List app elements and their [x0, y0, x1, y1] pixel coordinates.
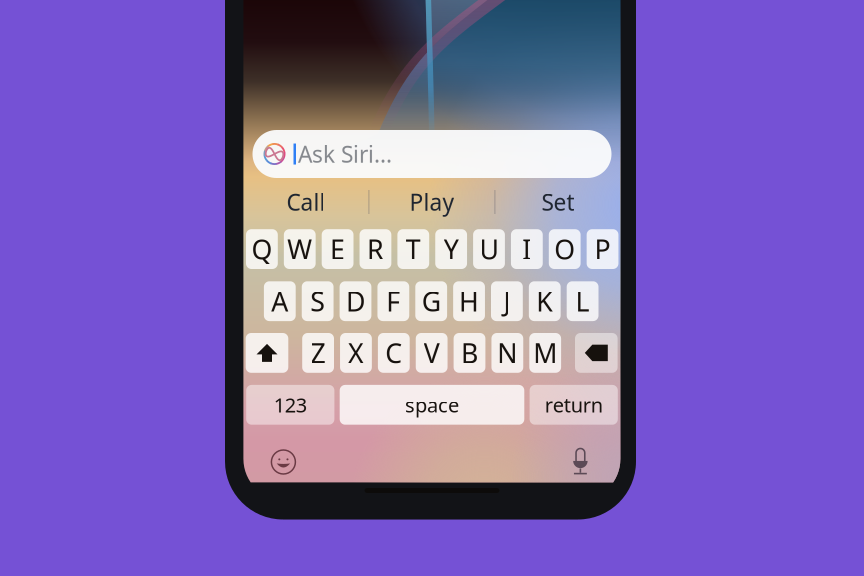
staticText: K: [536, 283, 553, 319]
button[interactable]: Shift: [246, 333, 288, 373]
button[interactable]: H: [453, 281, 485, 321]
staticText: G: [422, 283, 441, 319]
button[interactable]: U: [473, 229, 505, 269]
staticText: Play: [409, 187, 454, 217]
button[interactable]: N: [491, 333, 523, 373]
staticText: Ask Siri...: [298, 139, 392, 169]
staticText: H: [459, 283, 479, 319]
button[interactable]: W: [284, 229, 316, 269]
staticText: M: [533, 335, 557, 371]
button[interactable]: T: [397, 229, 429, 269]
button[interactable]: B: [454, 333, 485, 373]
button[interactable]: Set: [495, 188, 620, 216]
staticText: B: [461, 335, 478, 371]
button[interactable]: R: [360, 229, 391, 269]
button[interactable]: Play: [369, 188, 494, 216]
button[interactable]: S: [302, 281, 334, 321]
button[interactable]: F: [377, 281, 409, 321]
staticText: Y: [444, 231, 459, 267]
button[interactable]: X: [340, 333, 372, 373]
button[interactable]: Call: [243, 188, 368, 216]
button[interactable]: 123: [246, 385, 334, 425]
staticText: P: [595, 231, 611, 267]
button[interactable]: A: [264, 281, 296, 321]
staticText: W: [287, 231, 312, 267]
button[interactable]: M: [529, 333, 561, 373]
staticText: S: [310, 283, 325, 319]
button[interactable]: Delete: [575, 333, 618, 373]
button[interactable]: Z: [302, 333, 334, 373]
staticText: N: [497, 335, 517, 371]
button[interactable]: Q: [246, 229, 278, 269]
button[interactable]: I: [511, 229, 543, 269]
staticText: I: [522, 231, 531, 267]
staticText: Z: [311, 335, 326, 371]
staticText: 123: [274, 391, 307, 418]
staticText: R: [367, 231, 384, 267]
button[interactable]: C: [378, 333, 410, 373]
button[interactable]: space: [340, 385, 524, 425]
staticText: C: [385, 335, 402, 371]
staticText: T: [406, 231, 421, 267]
button[interactable]: Ask Siri...: [252, 130, 611, 178]
staticText: X: [348, 335, 364, 371]
button[interactable]: D: [340, 281, 371, 321]
button[interactable]: K: [529, 281, 561, 321]
staticText: O: [554, 231, 575, 267]
staticText: D: [346, 283, 365, 319]
button[interactable]: G: [415, 281, 447, 321]
staticText: Call: [286, 187, 325, 217]
button[interactable]: Y: [435, 229, 467, 269]
button[interactable]: L: [567, 281, 598, 321]
staticText: space: [405, 391, 459, 418]
button[interactable]: Dictate: [558, 440, 602, 484]
button[interactable]: return: [530, 385, 618, 425]
staticText: Set: [541, 187, 574, 217]
button[interactable]: Emoji: [261, 440, 305, 484]
staticText: Q: [251, 231, 272, 267]
button[interactable]: P: [587, 229, 618, 269]
staticText: F: [386, 283, 400, 319]
staticText: L: [576, 283, 590, 319]
staticText: V: [424, 335, 440, 371]
staticText: A: [271, 283, 288, 319]
staticText: return: [545, 391, 603, 418]
button[interactable]: J: [491, 281, 523, 321]
button[interactable]: E: [322, 229, 353, 269]
staticText: E: [330, 231, 345, 267]
button[interactable]: O: [549, 229, 581, 269]
staticText: J: [503, 283, 510, 319]
button[interactable]: V: [416, 333, 448, 373]
staticText: U: [479, 231, 498, 267]
